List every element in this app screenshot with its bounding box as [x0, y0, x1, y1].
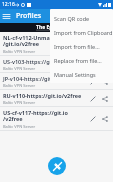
button[interactable]: Replace from file... — [50, 53, 113, 67]
staticText: The Epoch Times — [36, 24, 78, 31]
button[interactable]: Import from file... — [50, 39, 113, 53]
button[interactable]: Edit — [87, 93, 99, 105]
button[interactable]: Share — [99, 76, 111, 88]
button[interactable]: Open navigation drawer — [0, 10, 12, 22]
staticText: Import from Clipboard — [54, 29, 113, 36]
button[interactable]: Share — [99, 93, 111, 105]
button[interactable]: Edit — [87, 113, 99, 125]
button[interactable]: Share — [99, 113, 111, 125]
staticText: Profiles — [16, 11, 42, 21]
staticText: 12:16 — [2, 1, 15, 8]
button[interactable]: US-v103-https://gi — [0, 56, 113, 73]
staticText: Replace from file... — [54, 57, 102, 64]
staticText: Baltic VPN Server — [3, 124, 36, 129]
staticText: US-v103-https://gi — [3, 58, 52, 65]
staticText: Manual Settings — [54, 71, 96, 78]
button[interactable]: NL-cf-v112-Unma /git.io/v2free — [0, 32, 113, 56]
staticText: Baltic VPN Server — [3, 83, 36, 88]
button[interactable]: Import from Clipboard — [50, 25, 113, 39]
staticText: JP-v104-https://git.io/v2free — [3, 75, 77, 82]
button[interactable]: Connect — [48, 157, 66, 175]
staticText: NL-cf-v112-Unma /git.io/v2free — [3, 34, 50, 48]
button[interactable]: RU-v110-https://git.io/v2free — [0, 90, 113, 107]
button[interactable]: Edit — [87, 59, 99, 71]
button[interactable]: Edit — [87, 76, 99, 88]
button[interactable]: US-cf-v117-https://git.io /v2free — [0, 107, 113, 131]
button[interactable]: Edit — [87, 38, 99, 50]
button[interactable]: The Epoch Times — [0, 23, 113, 32]
staticText: RU-v110-https://git.io/v2free — [3, 92, 82, 99]
staticText: Scan QR code — [54, 15, 90, 22]
button[interactable]: Manual Settings — [50, 67, 113, 81]
staticText: Baltic VPN Server — [3, 49, 36, 54]
staticText: US-cf-v117-https://git.io /v2free — [3, 109, 68, 123]
button[interactable]: Scan QR code — [50, 11, 113, 25]
button[interactable]: Share — [99, 59, 111, 71]
staticText: Baltic VPN Server — [3, 100, 36, 105]
staticText: Import from file... — [54, 43, 100, 50]
button[interactable]: JP-v104-https://git.io/v2free — [0, 73, 113, 90]
staticText: Baltic VPN Server — [3, 66, 36, 71]
